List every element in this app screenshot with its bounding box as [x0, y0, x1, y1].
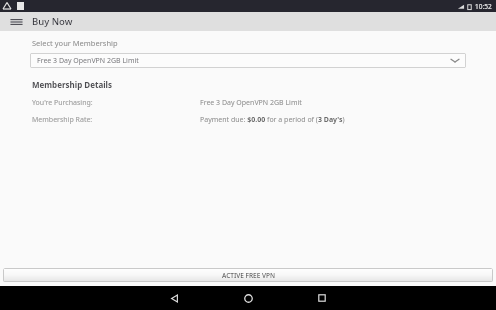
button[interactable]: Home: [224, 286, 272, 310]
staticText: Payment due: $0.00 for a period of (3 Da…: [200, 115, 345, 125]
staticText: You're Purchasing:: [32, 98, 93, 108]
button[interactable]: Free 3 Day OpenVPN 2GB Limit: [30, 53, 466, 68]
staticText: Membership Details: [32, 79, 112, 90]
staticText: Free 3 Day OpenVPN 2GB Limit: [200, 98, 302, 108]
staticText: Free 3 Day OpenVPN 2GB Limit: [37, 56, 139, 66]
button[interactable]: Back: [150, 286, 198, 310]
staticText: Select your Membership: [32, 38, 118, 48]
staticText: Buy Now: [32, 15, 73, 28]
button[interactable]: ACTIVE FREE VPN: [3, 268, 493, 282]
button[interactable]: Open navigation drawer: [0, 12, 32, 31]
staticText: 10:52: [475, 2, 492, 11]
staticText: Membership Rate:: [32, 115, 93, 125]
staticText: ACTIVE FREE VPN: [222, 271, 275, 280]
button[interactable]: Recent apps: [298, 286, 346, 310]
